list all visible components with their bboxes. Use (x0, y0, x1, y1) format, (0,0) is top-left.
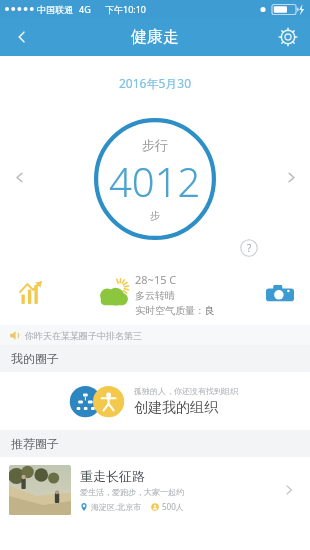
button[interactable]: Previous day (6, 164, 32, 190)
staticText: 健康走 (131, 27, 179, 47)
staticText: 4G (79, 3, 91, 15)
staticText: 重走长征路 (80, 468, 145, 484)
staticText: 你昨天在某某圈子中排名第三 (25, 330, 142, 341)
staticText: 步行 (142, 137, 168, 153)
button[interactable]: Camera (260, 274, 300, 314)
staticText: 28~15 C (135, 272, 177, 287)
other: Open circle detail (277, 478, 301, 502)
button[interactable]: Help (240, 239, 258, 257)
staticText: 中国联通 (37, 4, 73, 15)
button[interactable]: Back (0, 18, 44, 56)
staticText: 步 (150, 209, 160, 222)
button[interactable]: 步行 (94, 118, 216, 240)
staticText: 创建我的组织 (134, 399, 218, 417)
staticText: 2016年5月30 (119, 75, 192, 91)
staticText: 我的圈子 (11, 351, 59, 366)
staticText: 多云转晴 (135, 289, 175, 302)
button[interactable]: Statistics (10, 274, 50, 314)
staticText: 爱生活，爱跑步，大家一起约 (80, 487, 184, 497)
staticText: 下午10:10 (105, 3, 147, 15)
staticText: 海淀区.北京市 (91, 501, 142, 512)
button[interactable]: 孤独的人，你还没有找到组织 (0, 372, 310, 430)
staticText: 推荐圈子 (11, 436, 59, 451)
staticText: 500人 (162, 501, 184, 512)
staticText: 实时空气质量： (135, 304, 205, 317)
button[interactable]: 重走长征路 (0, 457, 310, 523)
staticText: 4012 (109, 154, 201, 208)
button[interactable]: 28~15 C (96, 272, 215, 317)
button[interactable]: Next day (278, 164, 304, 190)
staticText: ? (247, 241, 252, 255)
staticText: 良 (205, 304, 215, 317)
staticText: 孤独的人，你还没有找到组织 (134, 386, 238, 396)
button[interactable]: Settings (266, 18, 310, 56)
button[interactable]: 你昨天在某某圈子中排名第三 (0, 325, 310, 345)
